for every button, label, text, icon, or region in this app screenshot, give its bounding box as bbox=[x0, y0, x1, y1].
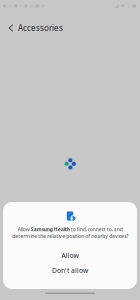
button[interactable]: Accessories bbox=[0, 12, 140, 44]
staticText: Allow Samsung Health to find, connect to… bbox=[12, 226, 128, 239]
staticText: Don't allow bbox=[52, 266, 88, 275]
staticText: Allow bbox=[61, 251, 78, 260]
button[interactable]: Don't allow bbox=[3, 263, 137, 278]
staticText: Accessories bbox=[18, 23, 63, 33]
button[interactable]: Allow bbox=[3, 248, 137, 263]
